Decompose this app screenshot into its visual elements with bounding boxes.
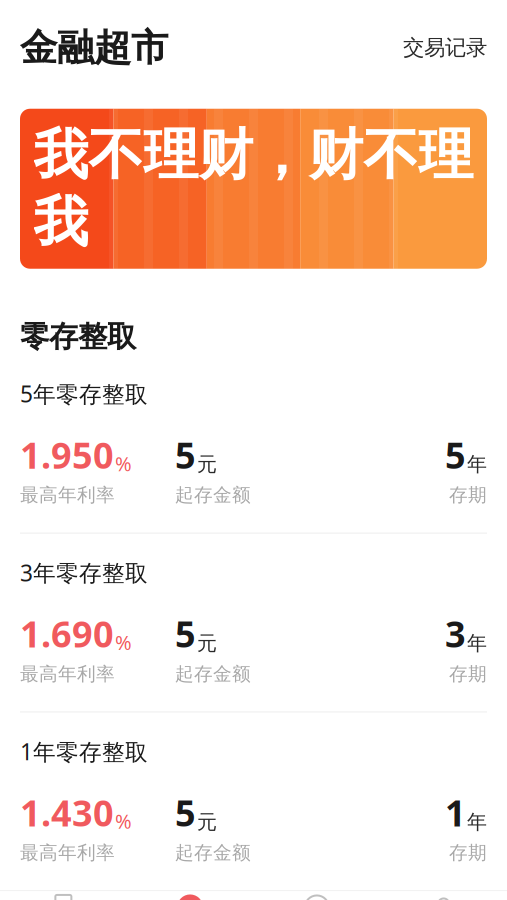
staticText: 年	[467, 631, 487, 655]
staticText: 1.950	[20, 431, 114, 479]
button[interactable]: ¥	[127, 887, 254, 900]
staticText: 最高年利率	[20, 841, 115, 864]
staticText: %	[115, 450, 132, 477]
staticText: 5	[175, 788, 196, 836]
staticText: 起存金额	[175, 484, 251, 507]
staticText: 5	[175, 610, 196, 657]
button[interactable]: 发现	[253, 887, 380, 900]
staticText: 元	[197, 631, 217, 655]
button[interactable]: 1年零存整取	[0, 712, 507, 890]
staticText: 1.690	[20, 610, 114, 657]
staticText: 1年零存整取	[20, 736, 148, 766]
button[interactable]: 首页	[0, 887, 127, 900]
staticText: 元	[197, 810, 217, 834]
staticText: 金融超市	[20, 25, 168, 71]
staticText: 5	[175, 431, 196, 479]
staticText: 我不理财，财不理我	[33, 122, 473, 256]
staticText: 零存整取	[20, 319, 136, 355]
button[interactable]: 5年零存整取	[0, 355, 507, 533]
staticText: 最高年利率	[20, 484, 115, 507]
staticText: 3年零存整取	[20, 558, 148, 588]
staticText: 1.430	[20, 788, 114, 836]
staticText: 3	[445, 610, 466, 657]
button[interactable]: 3年零存整取	[0, 534, 507, 711]
staticText: 元	[197, 452, 217, 477]
staticText: 年	[467, 810, 487, 834]
staticText: 年	[467, 452, 487, 477]
staticText: 5年零存整取	[20, 379, 148, 409]
button[interactable]: 我的	[380, 887, 507, 900]
staticText: 起存金额	[175, 841, 251, 864]
staticText: %	[115, 629, 132, 655]
staticText: 交易记录	[403, 35, 487, 61]
staticText: 1	[445, 788, 466, 836]
button[interactable]: 交易记录	[403, 29, 487, 67]
staticText: 最高年利率	[20, 662, 115, 685]
staticText: 5	[445, 431, 466, 479]
staticText: 存期	[449, 841, 487, 864]
staticText: %	[115, 808, 132, 834]
staticText: 存期	[449, 484, 487, 507]
staticText: 起存金额	[175, 662, 251, 685]
staticText: 存期	[449, 662, 487, 685]
staticText: ¥	[185, 894, 196, 900]
button[interactable]: 我不理财，财不理我	[20, 109, 487, 269]
